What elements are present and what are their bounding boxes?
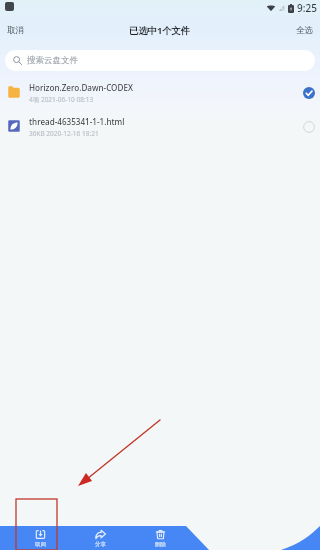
staticText: Horizon.Zero.Dawn-CODEX (29, 82, 133, 93)
staticText: 已选中1个文件 (129, 24, 191, 37)
staticText: 删除 (155, 541, 166, 548)
button[interactable]: 删除 (142, 527, 178, 550)
staticText: 搜索云盘文件 (27, 55, 78, 66)
staticText: 全选 (296, 25, 313, 36)
button[interactable]: 分享 (82, 527, 118, 550)
staticText: 取回 (35, 541, 46, 548)
staticText: 取消 (7, 25, 24, 36)
staticText: 4项 2021-06-10 08:13 (29, 95, 94, 104)
button[interactable]: 取回 (22, 527, 58, 550)
button[interactable]: 取消 (0, 20, 31, 41)
button[interactable]: Select (303, 121, 315, 133)
button[interactable]: Horizon.Zero.Dawn-CODEX (0, 76, 320, 110)
staticText: 9:25 (297, 1, 317, 15)
staticText: thread-4635341-1-1.html (29, 116, 125, 127)
button[interactable]: thread-4635341-1-1.html (0, 110, 320, 144)
button[interactable]: 搜索云盘文件 (5, 50, 315, 71)
staticText: 36KB 2020-12-16 18:21 (29, 129, 99, 138)
button[interactable]: 全选 (289, 20, 320, 41)
staticText: 分享 (95, 541, 106, 548)
button[interactable]: Selected (303, 87, 315, 99)
